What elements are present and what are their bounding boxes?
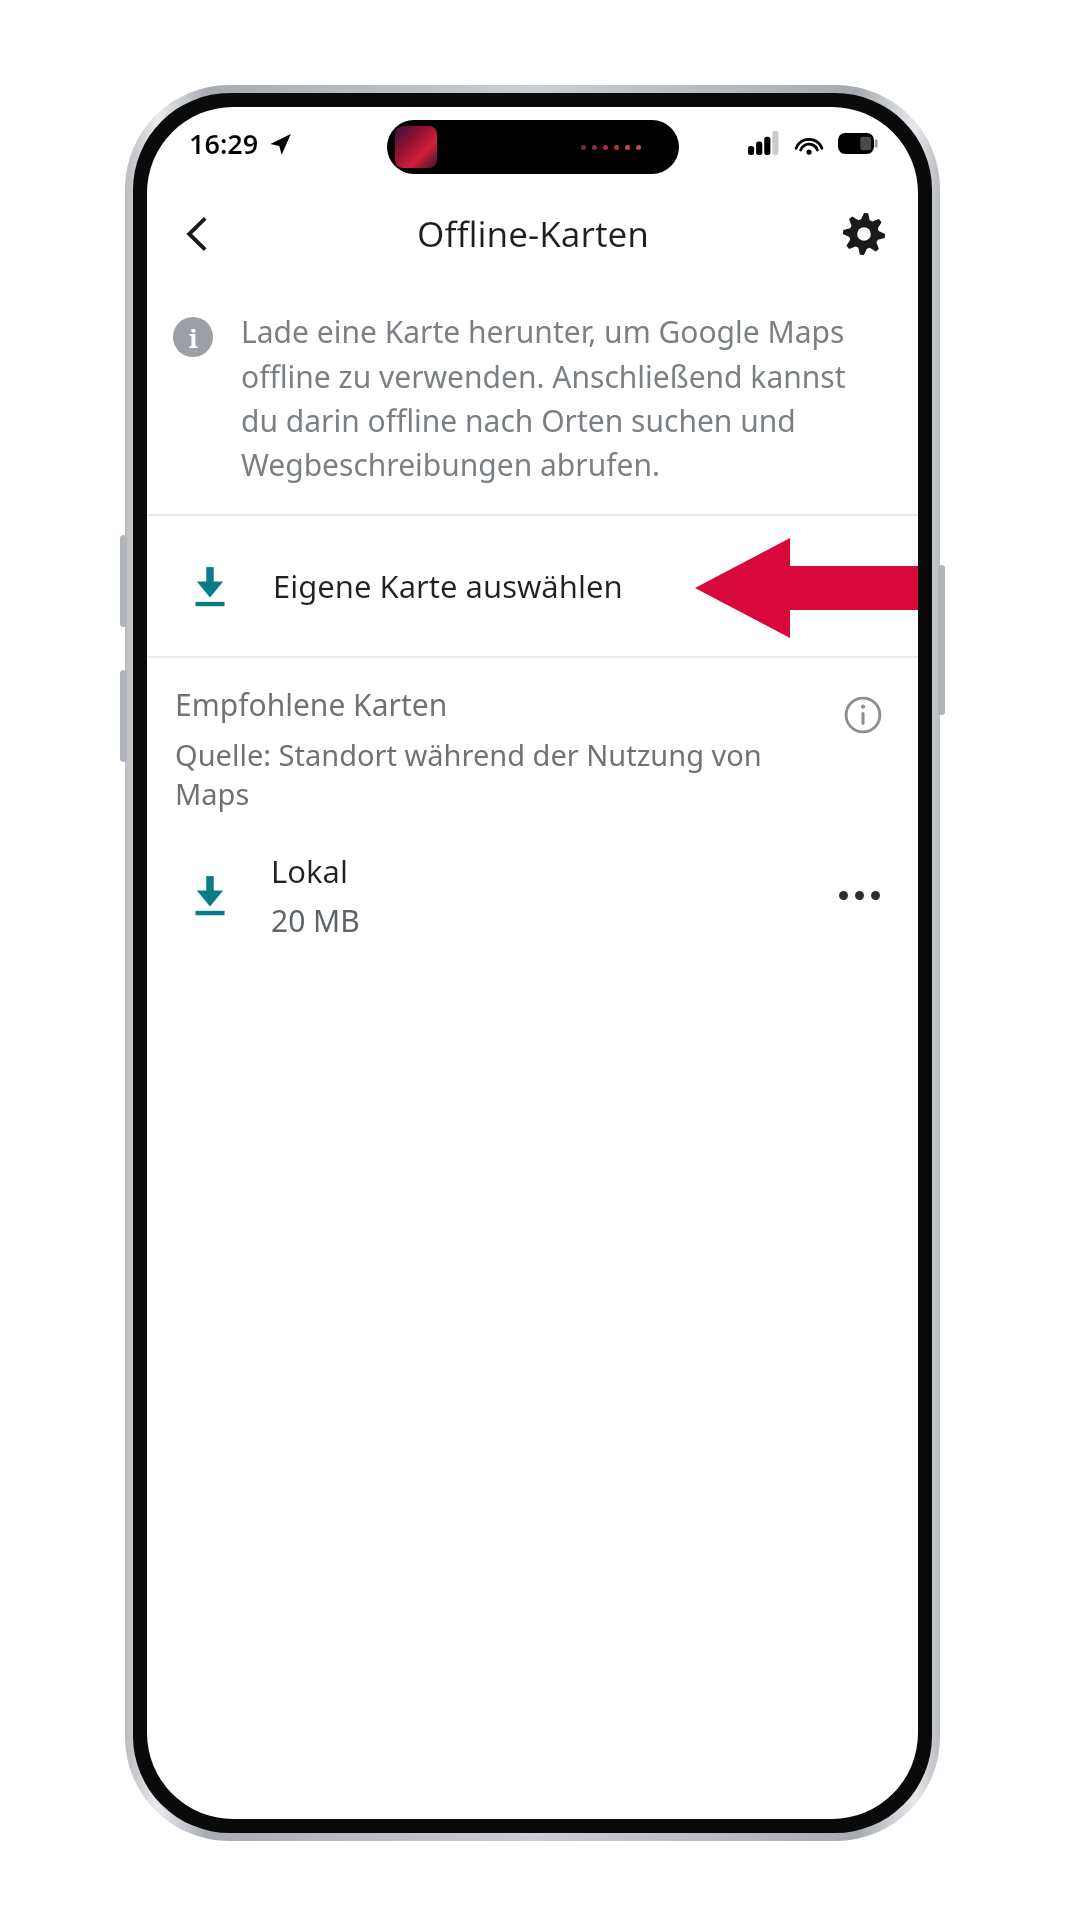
button[interactable]: Weitere Optionen [824, 860, 894, 930]
staticText: Empfohlene Karten [175, 684, 448, 725]
staticText: 20 MB [271, 900, 360, 941]
staticText: 16:29 [189, 125, 259, 162]
staticText: Offline-Karten [417, 210, 649, 258]
staticText: Eigene Karte auswählen [273, 565, 623, 607]
button[interactable]: Zurück [161, 198, 233, 270]
button[interactable]: Eigene Karte auswählen [147, 516, 918, 656]
staticText: i [189, 320, 198, 355]
button[interactable]: Lokal [147, 825, 918, 965]
button[interactable]: Einstellungen [828, 198, 900, 270]
staticText: Lokal [271, 850, 348, 892]
staticText: Lade eine Karte herunter, um Google Maps… [241, 311, 890, 484]
staticText: Quelle: Standort während der Nutzung von… [175, 735, 808, 813]
button[interactable]: Info [834, 686, 892, 744]
